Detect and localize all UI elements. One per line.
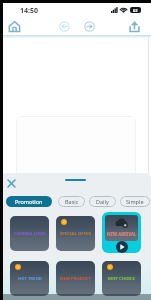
staticText: Promotion — [15, 198, 43, 205]
button[interactable]: COMING SOON — [10, 216, 49, 251]
button[interactable]: HOT TREND — [10, 261, 49, 296]
button[interactable]: Basic — [58, 196, 85, 207]
staticText: Simple — [126, 198, 144, 205]
button[interactable]: SPECIAL OFFER — [56, 216, 95, 251]
button[interactable]: Play — [116, 241, 128, 253]
button[interactable]: Daily — [89, 196, 116, 207]
staticText: NEW PRODUCT — [60, 276, 91, 282]
button[interactable]: Share — [128, 20, 141, 33]
staticText: SPECIAL OFFER — [60, 231, 91, 237]
staticText: BEST CHOICE — [108, 276, 135, 282]
button[interactable]: Simple — [120, 196, 150, 207]
staticText: NEW ARRIVAL — [107, 231, 137, 237]
staticText: COMING SOON — [14, 231, 46, 237]
staticText: 14:50 — [20, 6, 38, 16]
button[interactable]: Promotion — [6, 196, 52, 207]
staticText: HOT TREND — [18, 276, 42, 282]
staticText: 63 — [133, 8, 138, 13]
staticText: Daily — [96, 198, 109, 205]
staticText: Basic — [65, 198, 79, 205]
button[interactable]: Home — [8, 20, 21, 33]
button[interactable]: Back — [58, 20, 71, 33]
button[interactable]: NEW ARRIVAL — [102, 212, 141, 253]
button[interactable]: Close — [5, 177, 17, 189]
button[interactable]: Forward — [83, 20, 96, 33]
button[interactable]: NEW PRODUCT — [56, 261, 95, 296]
button[interactable]: BEST CHOICE — [102, 261, 141, 296]
